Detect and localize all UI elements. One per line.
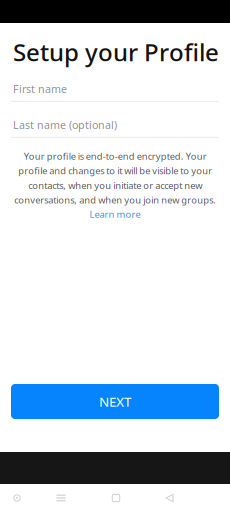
staticText: Your profile is end-to-end encrypted. Yo… [14, 150, 216, 206]
staticText: Learn more [89, 208, 140, 220]
button[interactable]: Learn more [89, 208, 140, 220]
staticText: Last name (optional) [13, 118, 117, 132]
button[interactable]: First name [11, 82, 219, 102]
button[interactable]: Assistant [3, 484, 31, 512]
staticText: First name [13, 82, 67, 96]
button[interactable]: NEXT [11, 384, 219, 419]
staticText: Setup your Profile [13, 36, 219, 68]
button[interactable]: Last name (optional) [11, 118, 219, 138]
button[interactable]: Back [155, 484, 183, 512]
staticText: NEXT [99, 393, 131, 410]
button[interactable]: Home [102, 484, 130, 512]
button[interactable]: Recent apps [47, 484, 75, 512]
